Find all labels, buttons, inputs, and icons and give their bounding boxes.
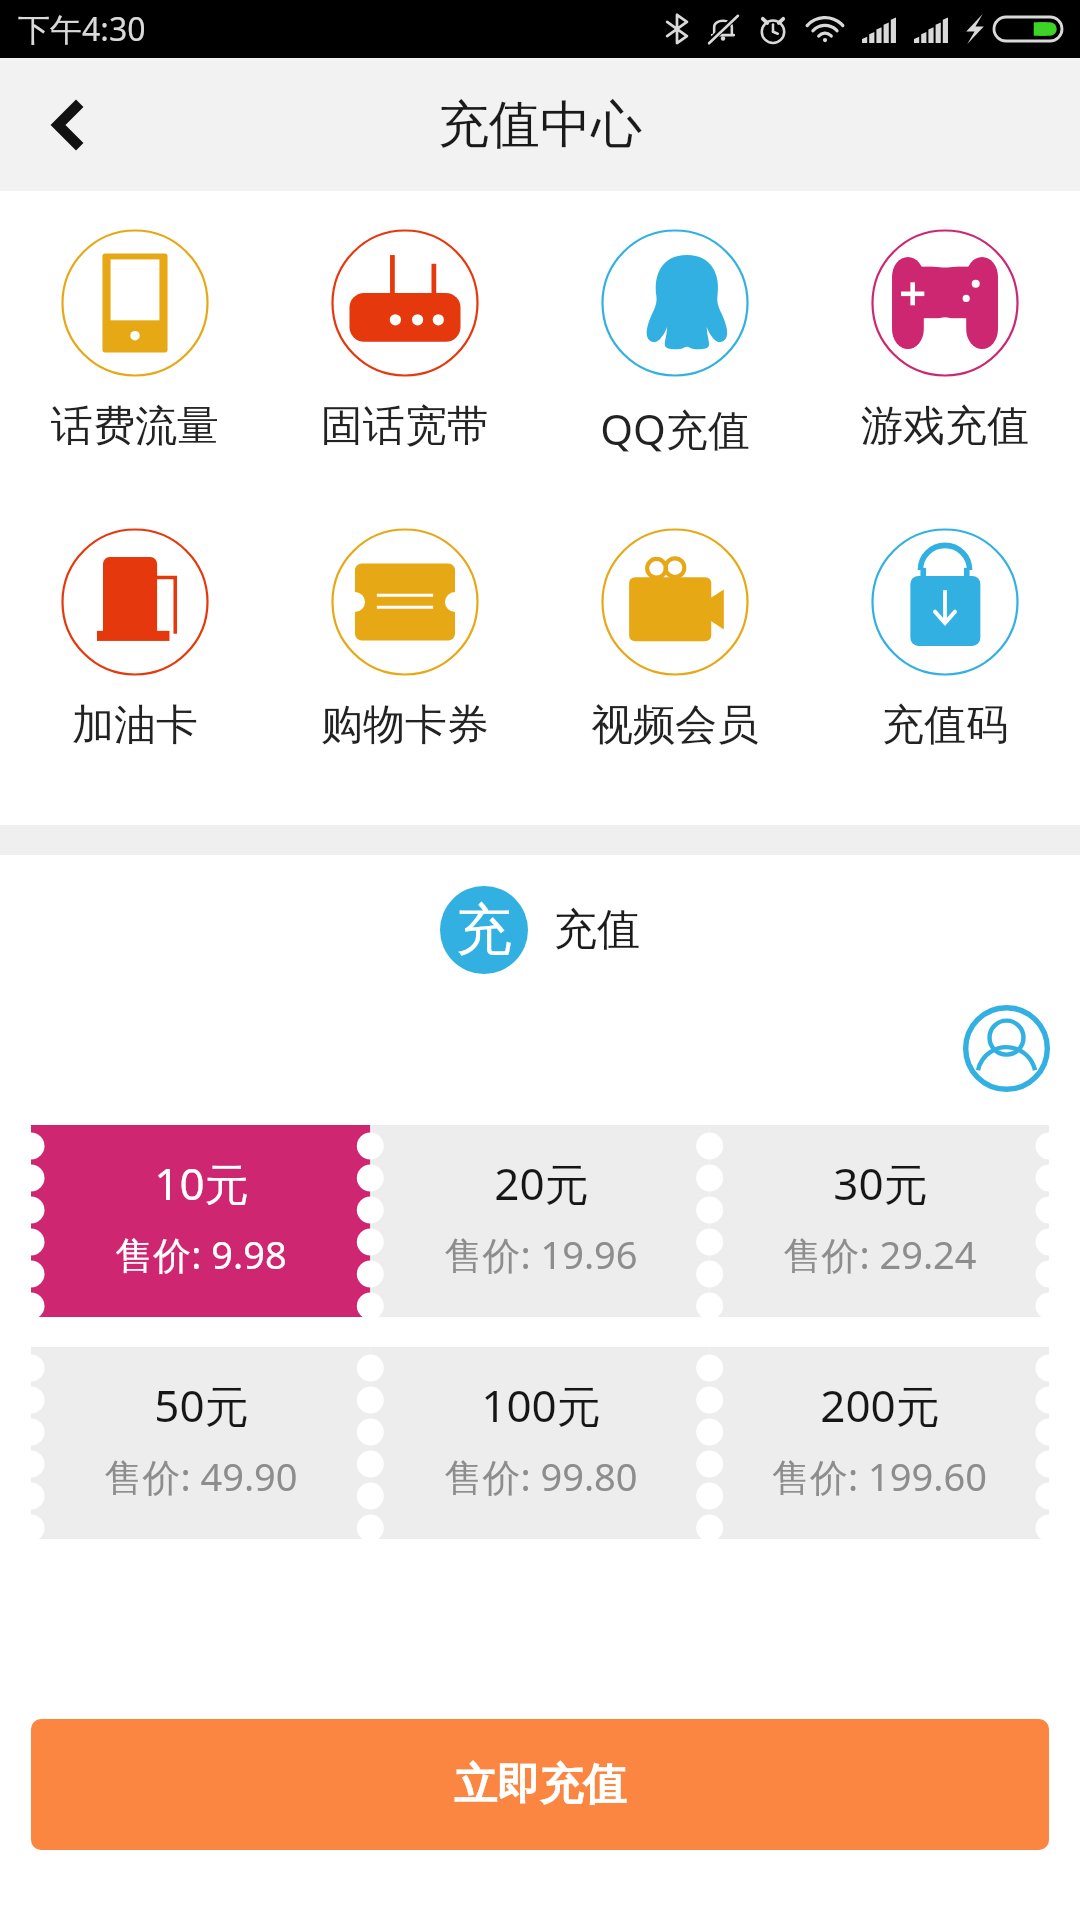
staticText: 充值 xyxy=(554,903,640,957)
button[interactable]: 30元 xyxy=(710,1125,1049,1317)
button[interactable]: 20元 xyxy=(371,1125,710,1317)
staticText: 售价: 9.98 xyxy=(115,1228,287,1280)
button[interactable]: 购物卡券 xyxy=(270,528,540,752)
staticText: 30元 xyxy=(833,1153,928,1213)
staticText: 50元 xyxy=(154,1375,249,1435)
button[interactable]: 游戏充值 xyxy=(810,229,1080,453)
button[interactable]: 固话宽带 xyxy=(270,229,540,453)
staticText: 售价: 29.24 xyxy=(783,1228,977,1280)
staticText: 购物卡券 xyxy=(321,699,489,752)
staticText: 充值中心 xyxy=(438,93,642,157)
button[interactable]: 50元 xyxy=(31,1347,371,1539)
button[interactable]: 视频会员 xyxy=(540,528,810,752)
staticText: 售价: 99.80 xyxy=(444,1450,638,1502)
button[interactable]: 立即充值 xyxy=(31,1719,1049,1850)
staticText: 下午4:30 xyxy=(18,7,146,51)
staticText: 充 xyxy=(456,895,512,966)
staticText: 10元 xyxy=(154,1153,249,1213)
button[interactable]: 10元 xyxy=(31,1125,371,1317)
button[interactable]: Back xyxy=(0,58,133,191)
staticText: 充值码 xyxy=(882,699,1008,752)
button[interactable]: Account xyxy=(963,1005,1050,1092)
staticText: 20元 xyxy=(494,1153,589,1213)
staticText: 售价: 19.96 xyxy=(444,1228,638,1280)
staticText: 立即充值 xyxy=(454,1758,626,1812)
staticText: QQ充值 xyxy=(600,400,750,457)
button[interactable]: 200元 xyxy=(710,1347,1049,1539)
staticText: 200元 xyxy=(820,1375,940,1435)
button[interactable]: 话费流量 xyxy=(0,229,270,453)
button[interactable]: 100元 xyxy=(371,1347,710,1539)
button[interactable]: 充值码 xyxy=(810,528,1080,752)
staticText: 话费流量 xyxy=(51,400,219,453)
staticText: 视频会员 xyxy=(591,699,759,752)
staticText: 100元 xyxy=(481,1375,601,1435)
button[interactable]: 加油卡 xyxy=(0,528,270,752)
staticText: 加油卡 xyxy=(72,699,198,752)
staticText: 游戏充值 xyxy=(861,400,1029,453)
staticText: 售价: 49.90 xyxy=(104,1450,298,1502)
staticText: 售价: 199.60 xyxy=(772,1450,987,1502)
staticText: 固话宽带 xyxy=(321,400,489,453)
button[interactable]: QQ充值 xyxy=(540,229,810,457)
